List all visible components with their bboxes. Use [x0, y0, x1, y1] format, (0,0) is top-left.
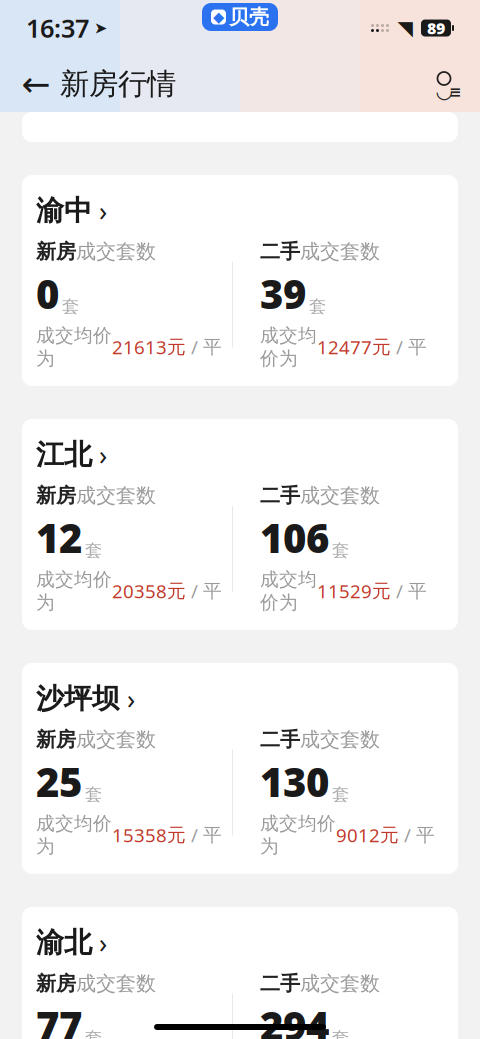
- staticText: 20358: [112, 579, 167, 603]
- button[interactable]: 江北: [22, 419, 458, 630]
- staticText: 9012: [336, 822, 380, 847]
- staticText: ≡: [449, 84, 461, 100]
- staticText: ›: [99, 437, 107, 472]
- staticText: 11529: [317, 579, 372, 603]
- staticText: ◆: [213, 9, 224, 25]
- button[interactable]: 渝北: [22, 907, 458, 1039]
- staticText: /: [399, 822, 416, 847]
- staticText: ◥: [397, 17, 412, 39]
- staticText: 套: [332, 1028, 349, 1039]
- button[interactable]: 沙坪坝: [22, 663, 458, 874]
- staticText: 二手: [260, 727, 300, 752]
- staticText: 0: [36, 267, 59, 320]
- staticText: 平: [416, 823, 435, 846]
- staticText: 21613: [112, 335, 167, 359]
- staticText: 套: [332, 784, 349, 805]
- staticText: 77: [36, 999, 82, 1039]
- staticText: 成交均价为: [260, 568, 317, 614]
- staticText: 二手: [260, 483, 300, 508]
- staticText: 平: [203, 823, 222, 846]
- staticText: 15358: [112, 822, 167, 847]
- staticText: 12477: [317, 335, 372, 359]
- staticText: /: [186, 579, 203, 603]
- staticText: ←: [21, 64, 50, 104]
- staticText: 成交均价为: [36, 812, 112, 858]
- staticText: 元: [372, 336, 391, 358]
- staticText: 元: [167, 823, 186, 846]
- staticText: 16:37: [26, 11, 89, 45]
- staticText: 成交套数: [76, 239, 156, 264]
- staticText: 106: [260, 511, 329, 564]
- staticText: 渝中: [36, 193, 92, 228]
- staticText: ›: [127, 681, 135, 716]
- staticText: 成交套数: [76, 971, 156, 996]
- staticText: 成交套数: [76, 727, 156, 752]
- staticText: 贝壳: [229, 5, 269, 29]
- staticText: 平: [408, 336, 427, 358]
- staticText: 套: [309, 296, 326, 317]
- staticText: 成交均价为: [36, 568, 112, 614]
- staticText: 元: [372, 579, 391, 602]
- staticText: 成交套数: [300, 971, 380, 996]
- staticText: 成交套数: [300, 239, 380, 264]
- staticText: 新房: [36, 971, 76, 996]
- staticText: /: [391, 579, 408, 603]
- staticText: 成交均价为: [260, 812, 336, 858]
- staticText: 二手: [260, 239, 300, 264]
- staticText: 25: [36, 755, 82, 808]
- staticText: ➤: [94, 19, 107, 37]
- staticText: 成交均价为: [260, 324, 317, 370]
- staticText: 新房行情: [60, 66, 176, 102]
- staticText: 套: [332, 540, 349, 561]
- staticText: 成交套数: [76, 483, 156, 508]
- button[interactable]: 我的: [422, 62, 466, 106]
- staticText: 元: [380, 823, 399, 846]
- staticText: /: [391, 335, 408, 359]
- staticText: ◡: [435, 80, 452, 102]
- staticText: 元: [167, 336, 186, 358]
- staticText: 成交均价为: [36, 324, 112, 370]
- staticText: 江北: [36, 437, 92, 472]
- staticText: ›: [99, 193, 107, 228]
- staticText: 套: [62, 296, 79, 317]
- staticText: 平: [203, 336, 222, 358]
- button[interactable]: 返回: [14, 62, 58, 106]
- button[interactable]: 渝中: [22, 175, 458, 386]
- staticText: 新房: [36, 483, 76, 508]
- staticText: 294: [260, 999, 329, 1039]
- staticText: 平: [408, 579, 427, 602]
- staticText: /: [186, 822, 203, 847]
- staticText: 新房: [36, 727, 76, 752]
- staticText: ›: [99, 925, 107, 960]
- staticText: 39: [260, 267, 306, 320]
- staticText: 套: [85, 784, 102, 805]
- staticText: 沙坪坝: [36, 681, 120, 716]
- staticText: 成交套数: [300, 727, 380, 752]
- staticText: 渝北: [36, 925, 92, 960]
- staticText: 平: [203, 579, 222, 602]
- staticText: 12: [36, 511, 82, 564]
- staticText: 套: [85, 540, 102, 561]
- staticText: /: [186, 335, 203, 359]
- staticText: 130: [260, 755, 329, 808]
- staticText: 新房: [36, 239, 76, 264]
- staticText: 成交套数: [300, 483, 380, 508]
- staticText: 二手: [260, 971, 300, 996]
- staticText: 元: [167, 579, 186, 602]
- staticText: 套: [85, 1028, 102, 1039]
- staticText: 89: [427, 17, 445, 39]
